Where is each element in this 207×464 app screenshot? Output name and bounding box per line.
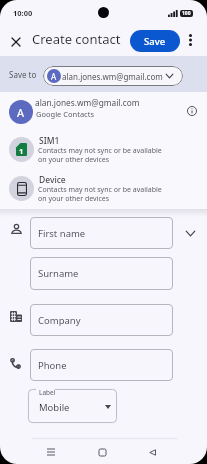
button[interactable]: Expand name fields xyxy=(179,222,201,244)
staticText: A xyxy=(51,71,57,82)
staticText: on your other devices xyxy=(38,155,110,165)
button[interactable]: Device xyxy=(0,175,207,211)
staticText: Company xyxy=(38,314,81,327)
button[interactable]: First name xyxy=(30,217,173,249)
button[interactable]: Close xyxy=(4,30,28,54)
staticText: Device xyxy=(39,174,66,186)
button[interactable]: A xyxy=(43,66,183,86)
staticText: Mobile xyxy=(39,401,70,414)
staticText: SIM1 xyxy=(39,135,60,147)
staticText: Contacts may not sync or be available xyxy=(38,146,162,156)
button[interactable]: Save xyxy=(130,30,180,52)
button[interactable]: 1 xyxy=(0,136,207,172)
button[interactable]: A xyxy=(0,95,207,128)
staticText: 10:00 xyxy=(13,8,33,18)
button[interactable]: Surname xyxy=(30,257,173,290)
staticText: Create contact xyxy=(32,30,121,48)
button[interactable]: More options xyxy=(179,29,201,51)
staticText: Google Contacts xyxy=(36,109,94,119)
button[interactable]: Label Mobile xyxy=(28,389,117,423)
staticText: Save to xyxy=(9,69,37,80)
staticText: A xyxy=(17,105,25,120)
staticText: alan.jones.wm@gmail.com xyxy=(62,71,163,82)
staticText: First name xyxy=(38,227,86,240)
button[interactable]: Company xyxy=(30,304,173,336)
button[interactable]: Recents xyxy=(43,444,59,460)
staticText: Contacts may not sync or be available xyxy=(38,185,162,195)
button[interactable]: Home xyxy=(94,444,110,460)
button[interactable]: Account info xyxy=(183,102,201,120)
staticText: Surname xyxy=(38,267,79,280)
staticText: Label xyxy=(39,388,56,397)
button[interactable]: Back xyxy=(144,444,160,460)
staticText: Save xyxy=(144,35,166,48)
button[interactable]: Phone xyxy=(30,349,173,381)
staticText: alan.jones.wm@gmail.com xyxy=(35,97,140,108)
staticText: 100 xyxy=(182,10,191,17)
staticText: on your other devices xyxy=(38,194,110,204)
staticText: 1 xyxy=(19,146,24,156)
staticText: Phone xyxy=(38,359,67,372)
